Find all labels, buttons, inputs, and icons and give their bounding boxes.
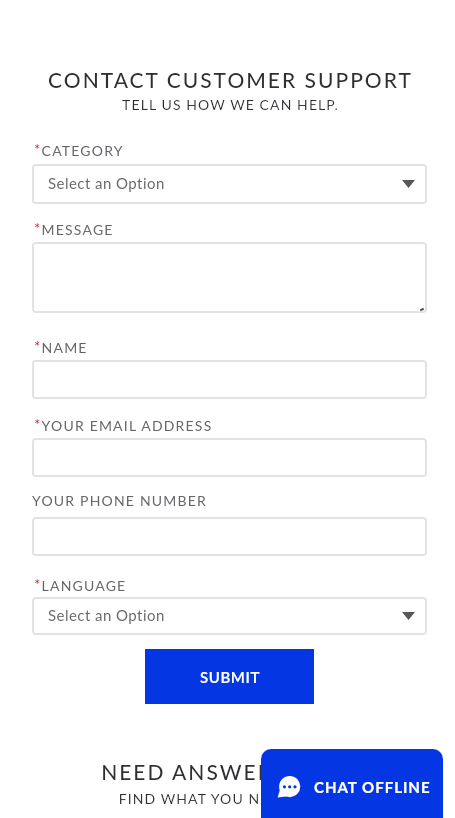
- button[interactable]: [32, 517, 427, 556]
- staticText: CONTACT CUSTOMER SUPPORT: [33, 67, 428, 92]
- staticText: YOUR PHONE NUMBER: [32, 492, 208, 509]
- other: Open CATEGORY options: [402, 180, 415, 188]
- button[interactable]: SUBMIT: [145, 649, 314, 704]
- staticText: SUBMIT: [200, 668, 260, 686]
- staticText: Select an Option: [48, 606, 165, 624]
- staticText: *CATEGORY: [34, 140, 124, 159]
- staticText: CHAT OFFLINE: [314, 778, 431, 796]
- button[interactable]: [32, 242, 427, 313]
- other: Chat bubble: [278, 775, 302, 799]
- staticText: *LANGUAGE: [34, 575, 127, 594]
- button[interactable]: Select an Option: [32, 597, 427, 635]
- button[interactable]: [32, 438, 427, 477]
- staticText: Select an Option: [48, 174, 165, 192]
- staticText: *MESSAGE: [34, 219, 114, 238]
- staticText: FIND WHAT YOU NEED: [7, 790, 402, 807]
- staticText: *NAME: [34, 337, 88, 356]
- button[interactable]: [32, 360, 427, 399]
- staticText: *YOUR EMAIL ADDRESS: [34, 415, 213, 434]
- staticText: NEED ANSWERS?: [2, 759, 397, 784]
- other: Open LANGUAGE options: [402, 612, 415, 620]
- button[interactable]: Chat bubble: [261, 749, 443, 818]
- staticText: TELL US HOW WE CAN HELP.: [33, 96, 428, 113]
- button[interactable]: Select an Option: [32, 164, 427, 204]
